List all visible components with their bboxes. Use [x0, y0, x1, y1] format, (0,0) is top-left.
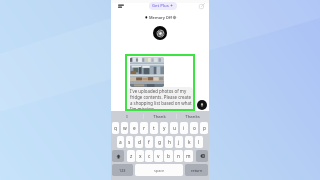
staticText: q [114, 125, 117, 132]
staticText: x [139, 153, 142, 160]
staticText: Memory Off [149, 15, 172, 20]
staticText: e [133, 125, 136, 132]
button[interactable]: Memory Off [145, 14, 176, 20]
staticText: o [193, 125, 196, 132]
button[interactable]: e [130, 122, 138, 134]
staticText: j [178, 139, 180, 146]
button[interactable]: l [195, 136, 203, 148]
staticText: m [186, 153, 191, 160]
staticText: p [203, 125, 206, 132]
staticText: Thank [153, 113, 166, 119]
staticText: a [119, 139, 122, 146]
staticText: k [188, 139, 191, 146]
button[interactable]: w [121, 122, 128, 134]
button[interactable]: n [174, 150, 183, 162]
staticText: f [148, 139, 150, 146]
staticText: i [183, 125, 185, 132]
staticText: u [173, 125, 176, 132]
button[interactable]: space [135, 164, 183, 176]
button[interactable]: I've uploaded photos of my fridge conten… [128, 87, 193, 111]
button[interactable]: m [184, 150, 193, 162]
button[interactable]: s [126, 136, 133, 148]
staticText: h [168, 139, 171, 146]
button[interactable]: Scroll to bottom [197, 100, 207, 110]
staticText: 123 [119, 168, 126, 173]
button[interactable]: f [145, 136, 153, 148]
staticText: Get Plus ✦ [152, 3, 174, 9]
staticText: z [130, 153, 133, 160]
button[interactable]: a [117, 136, 124, 148]
button[interactable]: j [175, 136, 183, 148]
staticText: w [123, 125, 127, 132]
button[interactable]: r [140, 122, 148, 134]
staticText: v [157, 153, 160, 160]
staticText: I [126, 113, 128, 119]
button[interactable]: 123 [112, 164, 133, 176]
button[interactable]: c [145, 150, 153, 162]
button[interactable]: I [111, 111, 143, 121]
button[interactable]: g [155, 136, 163, 148]
button[interactable]: b [164, 150, 173, 162]
button[interactable]: x [136, 150, 144, 162]
button[interactable]: Thank [143, 111, 176, 121]
button[interactable]: Backspace [196, 150, 208, 162]
staticText: I've uploaded photos of my fridge conten… [130, 88, 192, 111]
button[interactable]: return [185, 164, 208, 176]
button[interactable]: Shift [112, 150, 124, 162]
button[interactable]: k [185, 136, 193, 148]
staticText: r [143, 125, 145, 132]
button[interactable]: q [112, 122, 119, 134]
staticText: space [154, 168, 165, 173]
staticText: l [198, 139, 200, 146]
staticText: d [138, 139, 141, 146]
button[interactable]: y [160, 122, 168, 134]
button[interactable]: p [200, 122, 208, 134]
staticText: Thanks [185, 113, 200, 119]
button[interactable]: Thanks [176, 111, 209, 121]
button[interactable]: o [190, 122, 198, 134]
staticText: n [177, 153, 180, 160]
staticText: s [128, 139, 131, 146]
staticText: t [153, 125, 155, 132]
button[interactable]: d [135, 136, 143, 148]
button[interactable]: New chat [196, 1, 207, 11]
button[interactable]: Get Plus ✦ [149, 2, 177, 10]
button[interactable]: i [180, 122, 188, 134]
staticText: return [191, 168, 203, 173]
button[interactable]: ChatGPT [153, 26, 167, 40]
staticText: c [148, 153, 151, 160]
button[interactable]: z [127, 150, 135, 162]
staticText: y [163, 125, 166, 132]
staticText: b [167, 153, 170, 160]
button[interactable]: u [170, 122, 178, 134]
button[interactable]: h [165, 136, 173, 148]
button[interactable]: t [150, 122, 158, 134]
staticText: g [158, 139, 161, 146]
button[interactable]: v [154, 150, 163, 162]
button[interactable]: Menu [115, 1, 126, 11]
